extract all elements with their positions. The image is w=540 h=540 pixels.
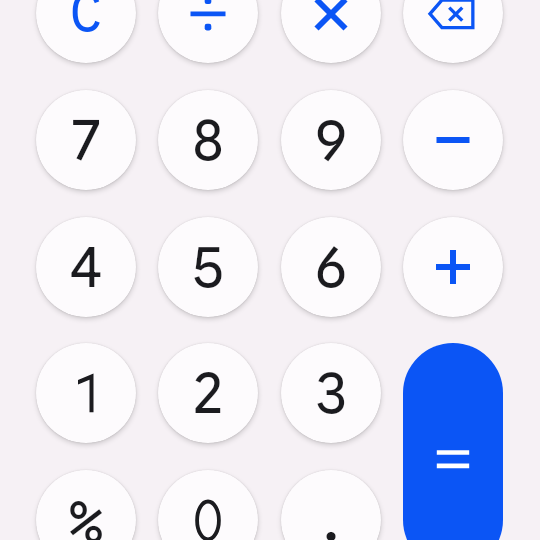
button[interactable] [36,343,136,443]
button[interactable]: Equals [403,343,503,540]
button[interactable] [158,470,258,540]
button[interactable]: 8 [158,90,258,190]
staticText: 4 [69,233,103,303]
button[interactable]: Divide [158,0,258,63]
staticText: 6 [314,233,348,303]
button[interactable]: 2 [158,343,258,443]
staticText: 9 [314,106,348,176]
staticText: 2 [191,359,225,429]
staticText: 5 [191,233,225,303]
button[interactable]: 3 [281,343,381,443]
button[interactable]: Backspace [403,0,503,63]
button[interactable]: 9 [281,90,381,190]
button[interactable]: % [36,470,136,540]
button[interactable]: 7 [36,90,136,190]
staticText: C [70,0,102,46]
button[interactable]: Plus [403,217,503,317]
button[interactable]: 4 [36,217,136,317]
button[interactable]: Minus [403,90,503,190]
button[interactable]: 6 [281,217,381,317]
staticText: % [69,488,103,540]
staticText: 3 [314,359,348,429]
button[interactable]: Clear [36,0,136,63]
button[interactable]: 5 [158,217,258,317]
button[interactable]: . [281,470,381,540]
staticText: . [314,486,348,540]
staticText: 7 [69,106,103,176]
staticText: 8 [191,106,225,176]
button[interactable]: Multiply [281,0,381,63]
